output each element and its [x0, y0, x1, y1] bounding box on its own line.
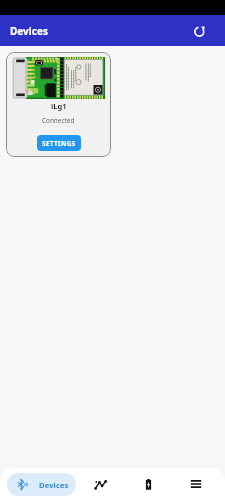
button[interactable]: Menu — [172, 468, 220, 500]
staticText: iLg1 — [51, 101, 67, 111]
button[interactable]: Monitoring — [77, 468, 124, 500]
staticText: Devices — [39, 480, 69, 490]
button[interactable]: Battery — [124, 468, 172, 500]
button[interactable]: Devices — [7, 473, 76, 496]
button[interactable]: iLg1 — [6, 52, 111, 157]
staticText: Devices — [10, 24, 48, 38]
button[interactable]: SETTINGS — [37, 135, 81, 151]
staticText: SETTINGS — [42, 139, 76, 148]
button[interactable]: Refresh — [191, 22, 209, 40]
staticText: Connected — [42, 116, 75, 125]
